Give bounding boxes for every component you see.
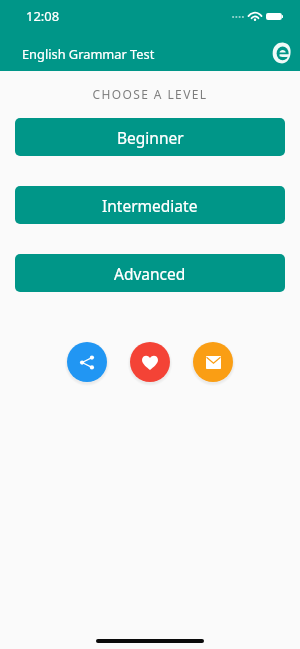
button[interactable]: Email [193, 342, 233, 382]
staticText: CHOOSE A LEVEL [0, 86, 300, 102]
button[interactable]: Favorite [130, 342, 170, 382]
button[interactable]: Intermediate [15, 186, 285, 224]
button[interactable]: App logo [270, 41, 292, 64]
button[interactable]: Beginner [15, 118, 285, 156]
staticText: Intermediate [102, 195, 198, 216]
button[interactable]: Advanced [15, 254, 285, 292]
staticText: Advanced [114, 263, 186, 284]
button[interactable]: Share [67, 342, 107, 382]
staticText: 12:08 [26, 7, 60, 25]
staticText: English Grammar Test [22, 45, 155, 62]
staticText: Beginner [117, 127, 184, 148]
